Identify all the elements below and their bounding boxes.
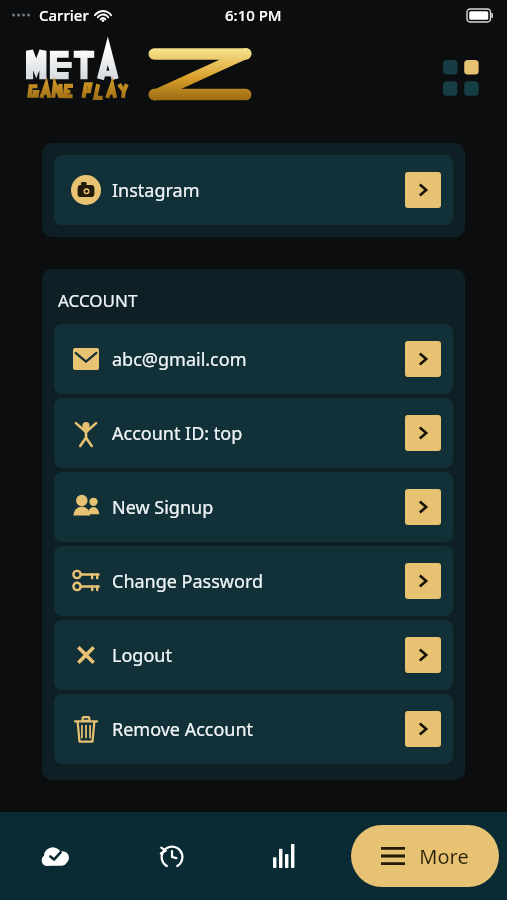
staticText: Remove Account	[112, 717, 405, 742]
staticText: abc@gmail.com	[112, 347, 405, 372]
button[interactable]: Change Password	[54, 546, 453, 616]
button[interactable]: History	[114, 812, 228, 900]
staticText: Logout	[112, 643, 405, 668]
button[interactable]: More	[351, 825, 499, 887]
button[interactable]: Saved	[0, 812, 114, 900]
button[interactable]: Remove Account	[54, 694, 453, 764]
button[interactable]: Instagram	[54, 155, 453, 225]
staticText: New Signup	[112, 495, 405, 520]
button[interactable]: New Signup	[54, 472, 453, 542]
staticText: Account ID: top	[112, 421, 405, 446]
staticText: ACCOUNT	[58, 289, 138, 312]
button[interactable]: Stats	[228, 812, 342, 900]
staticText: 6:10 PM	[225, 5, 282, 25]
button[interactable]: Account ID: top	[54, 398, 453, 468]
staticText: More	[419, 843, 469, 870]
staticText: Carrier	[39, 5, 89, 25]
button[interactable]: abc@gmail.com	[54, 324, 453, 394]
staticText: Change Password	[112, 569, 405, 594]
staticText: Instagram	[112, 178, 405, 203]
button[interactable]: Logout	[54, 620, 453, 690]
button[interactable]: Menu grid	[439, 56, 483, 100]
